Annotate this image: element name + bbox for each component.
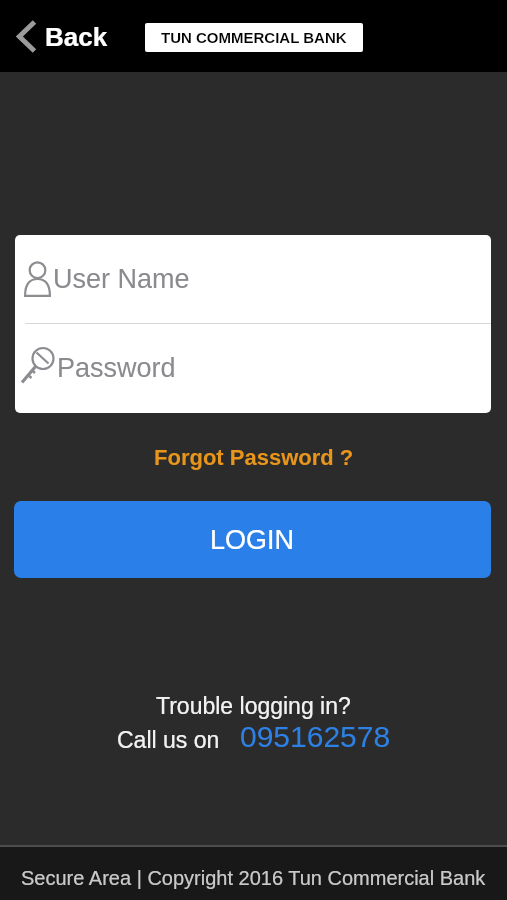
button[interactable]: User Name: [15, 235, 491, 323]
button[interactable]: Forgot Password ?: [154, 445, 354, 470]
staticText: LOGIN: [210, 525, 295, 555]
button[interactable]: LOGIN: [14, 501, 491, 578]
staticText: Trouble logging in?: [156, 693, 351, 719]
button[interactable]: TUN COMMERCIAL BANK: [145, 23, 363, 52]
staticText: Back: [45, 22, 108, 51]
staticText: Password: [57, 353, 176, 383]
staticText: Call us on: [117, 727, 220, 753]
staticText: TUN COMMERCIAL BANK: [161, 29, 347, 46]
staticText: User Name: [53, 264, 190, 294]
button[interactable]: Back: [16, 20, 108, 53]
button[interactable]: Password: [15, 324, 491, 412]
button[interactable]: 095162578: [240, 720, 391, 754]
staticText: Secure Area | Copyright 2016 Tun Commerc…: [21, 867, 486, 889]
